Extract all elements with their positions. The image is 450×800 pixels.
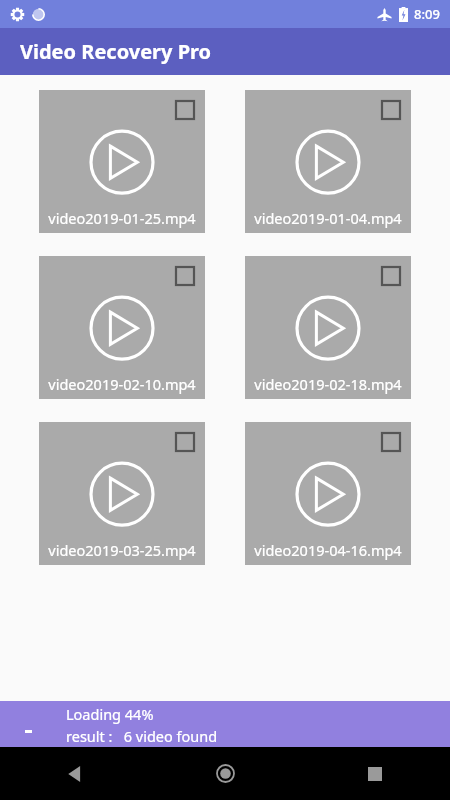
button[interactable]: Select video2019-04-16.mp4 xyxy=(382,433,400,451)
staticText: video2019-03-25.mp4 xyxy=(39,540,205,560)
button[interactable]: Select video2019-02-10.mp4 xyxy=(39,256,205,399)
button[interactable]: Select video2019-03-25.mp4 xyxy=(176,433,194,451)
button[interactable]: Select video2019-02-10.mp4 xyxy=(176,267,194,285)
staticText: video2019-02-10.mp4 xyxy=(39,374,205,394)
button[interactable]: Select video2019-03-25.mp4 xyxy=(39,422,205,565)
button[interactable]: Recent apps xyxy=(300,747,450,800)
button[interactable]: Select video2019-01-04.mp4 xyxy=(382,101,400,119)
staticText: Loading 44% xyxy=(66,704,154,724)
button[interactable]: Select video2019-01-25.mp4 xyxy=(39,90,205,233)
staticText: video2019-01-04.mp4 xyxy=(245,208,411,228)
staticText: video2019-01-25.mp4 xyxy=(39,208,205,228)
button[interactable]: Back xyxy=(0,747,150,800)
button[interactable]: Home xyxy=(150,747,300,800)
button[interactable]: Select video2019-01-04.mp4 xyxy=(245,90,411,233)
staticText: 8:09 xyxy=(414,5,440,23)
staticText: Video Recovery Pro xyxy=(20,38,212,65)
staticText: result : 6 video found xyxy=(66,726,218,746)
button[interactable]: Select video2019-04-16.mp4 xyxy=(245,422,411,565)
button[interactable]: Select video2019-02-18.mp4 xyxy=(382,267,400,285)
staticText: video2019-04-16.mp4 xyxy=(245,540,411,560)
staticText: video2019-02-18.mp4 xyxy=(245,374,411,394)
button[interactable]: Select video2019-01-25.mp4 xyxy=(176,101,194,119)
button[interactable]: Select video2019-02-18.mp4 xyxy=(245,256,411,399)
